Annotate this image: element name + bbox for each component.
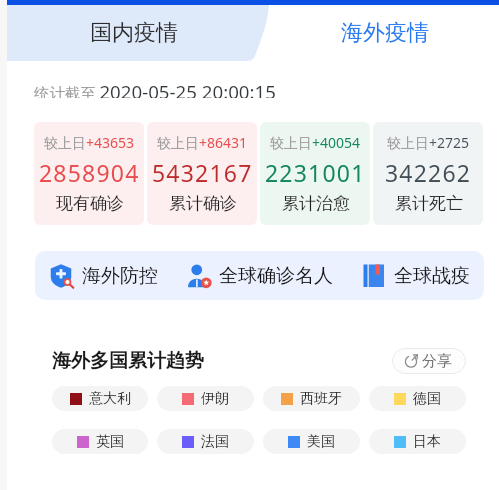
staticText: 全球确诊名人 xyxy=(219,264,333,288)
staticText: 英国 xyxy=(96,433,124,451)
staticText: 累计确诊 xyxy=(169,193,237,214)
staticText: 海外多国累计趋势 xyxy=(52,349,204,373)
staticText: 法国 xyxy=(201,433,229,451)
staticText: 2858904 xyxy=(39,157,140,188)
button[interactable]: 英国 xyxy=(52,429,148,454)
button[interactable]: 美国 xyxy=(263,429,360,454)
staticText: 较上日+86431 xyxy=(157,133,248,152)
staticText: 累计死亡 xyxy=(395,193,463,214)
button[interactable]: 较上日+2725 xyxy=(373,122,483,225)
staticText: 分享 xyxy=(422,352,452,371)
staticText: 美国 xyxy=(307,433,335,451)
button[interactable]: 伊朗 xyxy=(157,386,254,411)
button[interactable]: 分享 xyxy=(392,348,466,374)
staticText: 日本 xyxy=(413,433,441,451)
button[interactable]: 较上日+86431 xyxy=(147,122,257,225)
button[interactable]: 较上日+43653 xyxy=(34,122,144,225)
button[interactable]: 法国 xyxy=(157,429,254,454)
button[interactable]: 国内疫情 xyxy=(7,5,261,61)
button[interactable]: 意大利 xyxy=(52,386,148,411)
staticText: 累计治愈 xyxy=(282,193,350,214)
staticText: 5432167 xyxy=(152,157,253,188)
button[interactable]: 日本 xyxy=(369,429,466,454)
staticText: 意大利 xyxy=(89,390,131,408)
staticText: 较上日+40054 xyxy=(270,133,361,152)
button[interactable]: 德国 xyxy=(369,386,466,411)
staticText: 西班牙 xyxy=(300,390,342,408)
staticText: 较上日+43653 xyxy=(44,133,135,152)
staticText: 全球战疫 xyxy=(394,264,470,288)
staticText: 伊朗 xyxy=(201,390,229,408)
staticText: 统计截至 2020-05-25 20:00:15 xyxy=(34,79,276,98)
button[interactable]: 西班牙 xyxy=(263,386,360,411)
button[interactable]: 全球战疫 xyxy=(362,251,470,300)
staticText: 德国 xyxy=(413,390,441,408)
staticText: 海外疫情 xyxy=(341,19,429,47)
staticText: 海外防控 xyxy=(82,264,158,288)
button[interactable]: 海外疫情 xyxy=(270,5,499,61)
button[interactable]: 海外防控 xyxy=(50,251,158,300)
staticText: 现有确诊 xyxy=(56,193,124,214)
button[interactable]: 全球确诊名人 xyxy=(187,251,333,300)
staticText: 2231001 xyxy=(265,157,366,188)
staticText: 国内疫情 xyxy=(90,19,178,47)
button[interactable]: 较上日+40054 xyxy=(260,122,370,225)
staticText: 较上日+2725 xyxy=(387,133,470,152)
staticText: 342262 xyxy=(385,157,472,188)
